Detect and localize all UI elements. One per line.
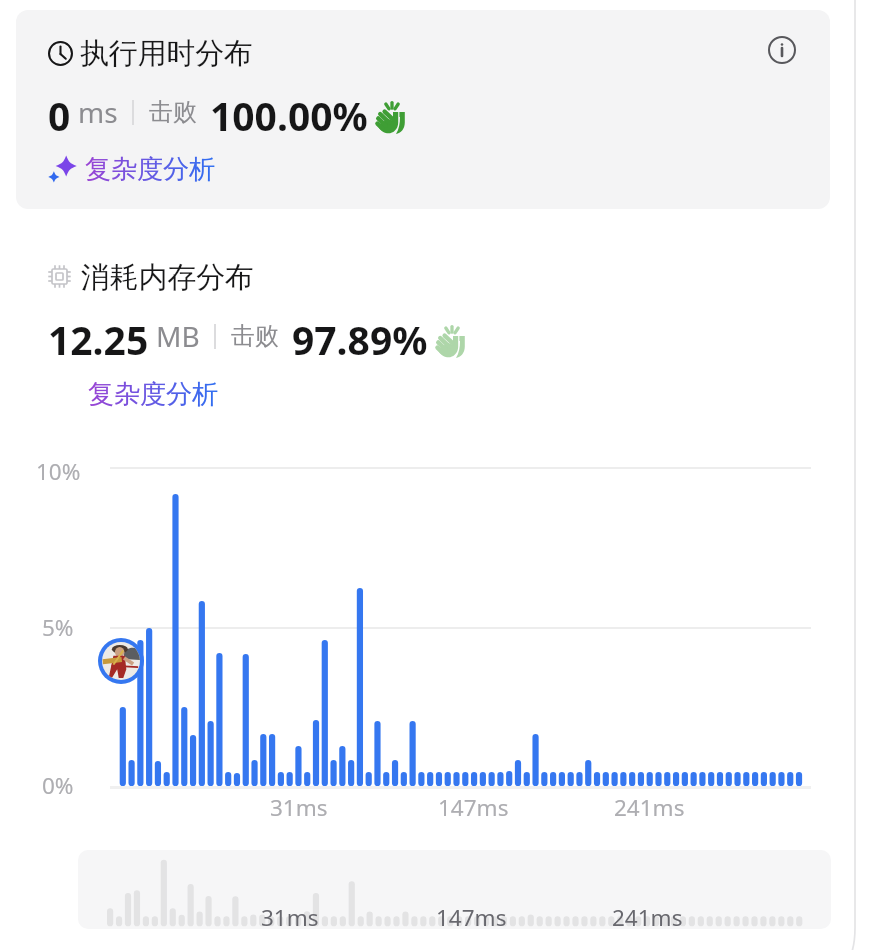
button[interactable] xyxy=(78,850,831,929)
staticText: 0% xyxy=(42,770,74,801)
staticText: 0 xyxy=(48,89,71,135)
staticText: 12.25 xyxy=(48,313,149,359)
button[interactable]: Your result xyxy=(98,638,144,684)
staticText: MB xyxy=(156,317,200,355)
staticText: 5% xyxy=(42,612,74,643)
staticText: 147ms xyxy=(436,902,507,933)
staticText: 复杂度分析 xyxy=(85,153,215,186)
staticText: 241ms xyxy=(614,792,685,823)
staticText: 147ms xyxy=(438,792,509,823)
staticText: 执行用时分布 xyxy=(80,35,253,71)
button[interactable]: 复杂度分析 xyxy=(47,153,215,191)
button[interactable]: 复杂度分析 xyxy=(88,378,218,416)
staticText: 消耗内存分布 xyxy=(81,259,254,295)
staticText: ms xyxy=(78,93,118,131)
button[interactable]: Info xyxy=(768,36,796,64)
staticText: 击败 xyxy=(231,321,279,351)
staticText: 击败 xyxy=(149,97,197,127)
staticText: 97.89% xyxy=(292,313,428,359)
staticText: 31ms xyxy=(270,792,328,823)
staticText: 241ms xyxy=(612,902,683,933)
staticText: 100.00% xyxy=(210,89,368,135)
staticText: 31ms xyxy=(261,902,319,933)
staticText: 复杂度分析 xyxy=(88,378,218,411)
staticText: 10% xyxy=(36,456,81,487)
button[interactable] xyxy=(16,10,830,209)
